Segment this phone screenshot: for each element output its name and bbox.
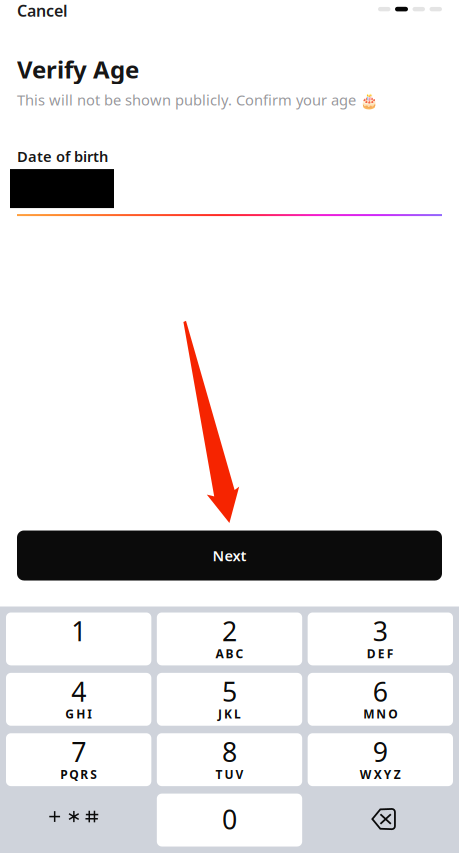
button[interactable]: 0 bbox=[157, 794, 302, 846]
staticText: Verify Age bbox=[17, 53, 139, 85]
staticText: Cancel bbox=[17, 0, 68, 21]
staticText: 8 bbox=[222, 734, 237, 769]
button[interactable]: 5 bbox=[157, 673, 302, 726]
staticText: Next bbox=[212, 546, 246, 565]
button[interactable]: 3 bbox=[308, 612, 453, 665]
staticText: PQRS bbox=[60, 766, 97, 782]
button[interactable]: 8 bbox=[157, 733, 302, 786]
staticText: 1 bbox=[71, 613, 86, 649]
button[interactable]: Symbols bbox=[6, 794, 151, 846]
button[interactable]: 2 bbox=[157, 612, 302, 665]
staticText: 9 bbox=[373, 734, 388, 769]
staticText: 0 bbox=[222, 801, 237, 837]
button[interactable]: 1 bbox=[6, 612, 151, 665]
staticText: 3 bbox=[373, 613, 388, 649]
button[interactable]: Cancel bbox=[17, 0, 68, 21]
button[interactable]: 6 bbox=[308, 673, 453, 726]
staticText: JKL bbox=[218, 706, 241, 722]
button[interactable]: 7 bbox=[6, 733, 151, 786]
staticText: 6 bbox=[373, 674, 388, 709]
button[interactable]: Next bbox=[17, 530, 442, 580]
staticText: DEF bbox=[367, 645, 394, 661]
button[interactable]: 9 bbox=[308, 733, 453, 786]
button[interactable]: 4 bbox=[6, 673, 151, 726]
staticText: 5 bbox=[222, 674, 237, 709]
staticText: GHI bbox=[65, 706, 92, 722]
staticText: ABC bbox=[215, 645, 243, 661]
staticText: 4 bbox=[71, 674, 86, 709]
staticText: WXYZ bbox=[360, 766, 401, 782]
staticText: MNO bbox=[363, 706, 397, 722]
staticText: Date of birth bbox=[17, 147, 108, 166]
staticText: TUV bbox=[215, 766, 243, 782]
staticText: 2 bbox=[222, 613, 237, 649]
staticText: 7 bbox=[71, 734, 86, 769]
button[interactable]: Delete bbox=[308, 794, 453, 846]
staticText: This will not be shown publicly. Confirm… bbox=[17, 90, 378, 110]
